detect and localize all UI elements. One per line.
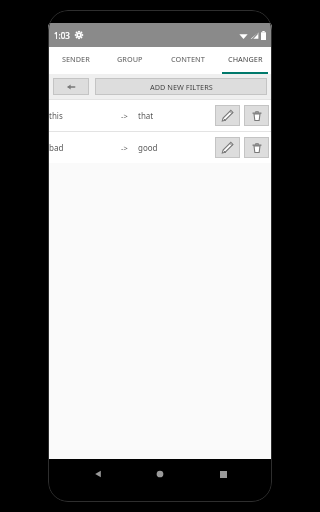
button[interactable]: Delete: [244, 105, 269, 126]
button[interactable]: Home: [147, 461, 173, 487]
button[interactable]: CONTENT: [157, 47, 218, 74]
button[interactable]: CHANGER: [218, 47, 272, 74]
staticText: good: [138, 142, 158, 153]
button[interactable]: this: [48, 100, 272, 131]
staticText: bad: [49, 142, 64, 153]
staticText: this: [49, 110, 63, 121]
button[interactable]: Delete: [244, 137, 269, 158]
button[interactable]: Back: [85, 461, 111, 487]
staticText: GROUP: [117, 54, 143, 64]
button[interactable]: GROUP: [103, 47, 157, 74]
button[interactable]: Edit: [215, 105, 240, 126]
button[interactable]: SENDER: [48, 47, 103, 74]
button[interactable]: bad: [48, 132, 272, 163]
button[interactable]: ADD NEW FILTERS: [95, 78, 267, 95]
staticText: ADD NEW FILTERS: [150, 82, 213, 92]
button[interactable]: Back: [53, 78, 89, 95]
button[interactable]: Recents: [210, 461, 236, 487]
staticText: CHANGER: [228, 54, 263, 64]
staticText: 1:03: [54, 30, 70, 41]
button[interactable]: Edit: [215, 137, 240, 158]
staticText: that: [138, 110, 154, 121]
staticText: SENDER: [62, 54, 90, 64]
staticText: CONTENT: [171, 54, 205, 64]
staticText: ->: [121, 143, 128, 153]
staticText: ->: [121, 111, 128, 121]
